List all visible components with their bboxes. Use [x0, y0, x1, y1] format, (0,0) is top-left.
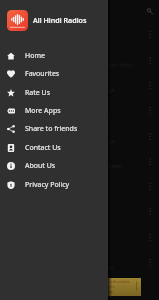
staticText: ngs: [105, 86, 115, 93]
button[interactable]: More options: [142, 27, 156, 41]
staticText: ngs: [105, 137, 115, 144]
button[interactable]: Share to friends: [0, 120, 108, 138]
staticText: Home: [25, 51, 45, 61]
staticText: Privacy Policy: [25, 180, 70, 190]
button[interactable]: More options: [142, 179, 156, 193]
button[interactable]: Home: [0, 47, 108, 65]
button[interactable]: Favourites: [0, 65, 108, 83]
staticText: Contact Us: [25, 143, 61, 153]
button[interactable]: e affordable: [106, 278, 141, 296]
staticText: eals: [107, 284, 115, 289]
button[interactable]: More options: [142, 129, 156, 143]
staticText: Rate Us: [25, 88, 51, 98]
staticText: e affordable: [107, 279, 130, 284]
staticText: sic: [105, 111, 112, 118]
button[interactable]: Search: [141, 3, 157, 19]
staticText: day: [107, 289, 113, 294]
staticText: am: [105, 263, 114, 270]
button[interactable]: [106, 47, 159, 72]
button[interactable]: [106, 148, 159, 173]
button[interactable]: [106, 199, 159, 224]
button[interactable]: More options: [142, 230, 156, 244]
button[interactable]: [106, 98, 159, 123]
staticText: More Apps: [25, 106, 61, 116]
staticText: ow: [107, 294, 112, 297]
button[interactable]: More options: [142, 78, 156, 92]
button[interactable]: More options: [142, 255, 156, 269]
staticText: Favourites: [25, 69, 60, 79]
button[interactable]: More options: [142, 103, 156, 117]
button[interactable]: [106, 250, 159, 275]
staticText: All Hindi Radios: [33, 15, 87, 25]
button[interactable]: More options: [142, 154, 156, 168]
button[interactable]: [106, 22, 159, 47]
button[interactable]: More options: [142, 204, 156, 218]
staticText: About Us: [25, 161, 56, 171]
button[interactable]: Rate Us: [0, 84, 108, 102]
button[interactable]: [106, 123, 159, 148]
staticText: ontent: [105, 162, 123, 169]
button[interactable]: About Us: [0, 157, 108, 175]
staticText: Share to friends: [25, 124, 78, 134]
button[interactable]: More Apps: [0, 102, 108, 120]
button[interactable]: More options: [142, 53, 156, 67]
button[interactable]: [106, 174, 159, 199]
button[interactable]: Contact Us: [0, 139, 108, 157]
staticText: ction of All: [105, 61, 133, 68]
button[interactable]: [106, 224, 159, 249]
button[interactable]: Privacy Policy: [0, 176, 108, 194]
button[interactable]: [106, 72, 159, 97]
